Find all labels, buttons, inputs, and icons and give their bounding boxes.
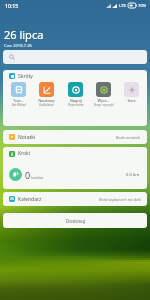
staticText: Bezp. wyczyść bbox=[94, 103, 114, 107]
staticText: Skróty bbox=[18, 73, 33, 80]
staticText: 26 bbox=[10, 197, 14, 201]
button[interactable]: Szukaj bbox=[3, 50, 147, 64]
staticText: Kalendarz bbox=[18, 196, 42, 203]
staticText: Czw 2018.7.26 bbox=[4, 43, 33, 49]
staticText: 10:15 bbox=[5, 2, 19, 9]
staticText: 0 bbox=[25, 169, 31, 181]
button[interactable]: Skróty bbox=[9, 70, 147, 82]
staticText: Kalkulator bbox=[39, 103, 54, 107]
button[interactable]: Inne bbox=[118, 82, 145, 103]
button[interactable]: Naukowy bbox=[33, 82, 60, 107]
staticText: Nagraj bbox=[70, 98, 82, 103]
staticText: Brak notatek bbox=[116, 135, 141, 140]
staticText: Notatki bbox=[18, 134, 36, 141]
staticText: Art Wskaź bbox=[12, 103, 26, 107]
button[interactable]: Notatki bbox=[3, 130, 147, 144]
button[interactable]: Wycz... bbox=[90, 82, 117, 107]
staticText: Naukowy bbox=[38, 98, 55, 103]
staticText: Rejestrator bbox=[68, 103, 84, 107]
button[interactable]: Tran... bbox=[5, 82, 32, 107]
button[interactable]: Nagraj bbox=[62, 82, 89, 107]
staticText: Dostosuj bbox=[66, 218, 85, 224]
button[interactable]: Dostosuj bbox=[3, 213, 147, 228]
staticText: LTE bbox=[119, 3, 126, 9]
staticText: 26 lipca bbox=[4, 27, 44, 42]
staticText: 70% bbox=[138, 3, 147, 9]
staticText: Brak wydarzeń na dziś bbox=[99, 197, 141, 202]
button[interactable]: 26 bbox=[3, 192, 147, 206]
staticText: Kroki bbox=[18, 150, 31, 157]
staticText: 0.0 km bbox=[126, 172, 140, 178]
staticText: Wycz... bbox=[97, 98, 110, 103]
staticText: Tran... bbox=[13, 98, 24, 103]
staticText: Inne bbox=[127, 98, 136, 103]
staticText: kroków bbox=[31, 175, 44, 180]
button[interactable]: Kroki bbox=[3, 147, 147, 189]
